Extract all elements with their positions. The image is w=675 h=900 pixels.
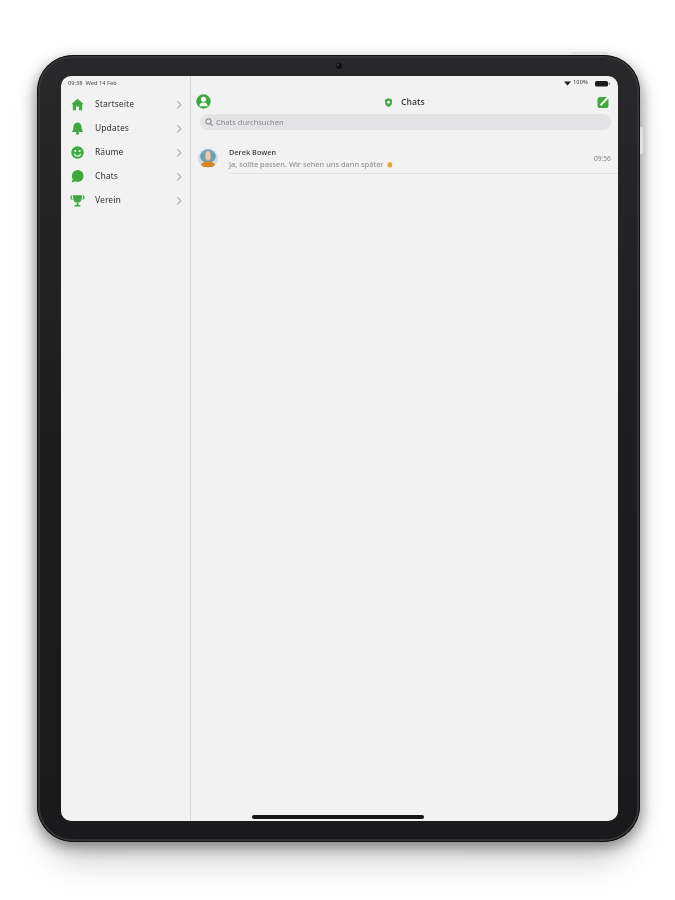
- staticText: Chats: [401, 96, 425, 108]
- staticText: 100%: [573, 78, 588, 86]
- button[interactable]: Startseite: [61, 92, 190, 116]
- button[interactable]: Updates: [61, 116, 190, 140]
- staticText: Ja, sollte passen. Wir sehen uns dann sp…: [229, 159, 384, 169]
- staticText: Updates: [95, 122, 129, 134]
- button[interactable]: Räume: [61, 140, 190, 164]
- button[interactable]: [597, 95, 611, 109]
- staticText: Derek Bowen: [229, 147, 277, 157]
- button[interactable]: Chats durchsuchen: [200, 114, 611, 130]
- staticText: 09:38 Wed 14 Feb: [68, 79, 117, 87]
- button[interactable]: Verein: [61, 188, 190, 212]
- button[interactable]: [195, 93, 212, 110]
- staticText: 09:56: [594, 154, 611, 163]
- staticText: Verein: [95, 194, 121, 206]
- staticText: Räume: [95, 146, 124, 158]
- button[interactable]: Chats: [61, 164, 190, 188]
- staticText: Chats: [95, 170, 118, 182]
- button[interactable]: Derek Bowen: [191, 144, 618, 172]
- staticText: Chats durchsuchen: [216, 117, 284, 127]
- staticText: Startseite: [95, 98, 135, 110]
